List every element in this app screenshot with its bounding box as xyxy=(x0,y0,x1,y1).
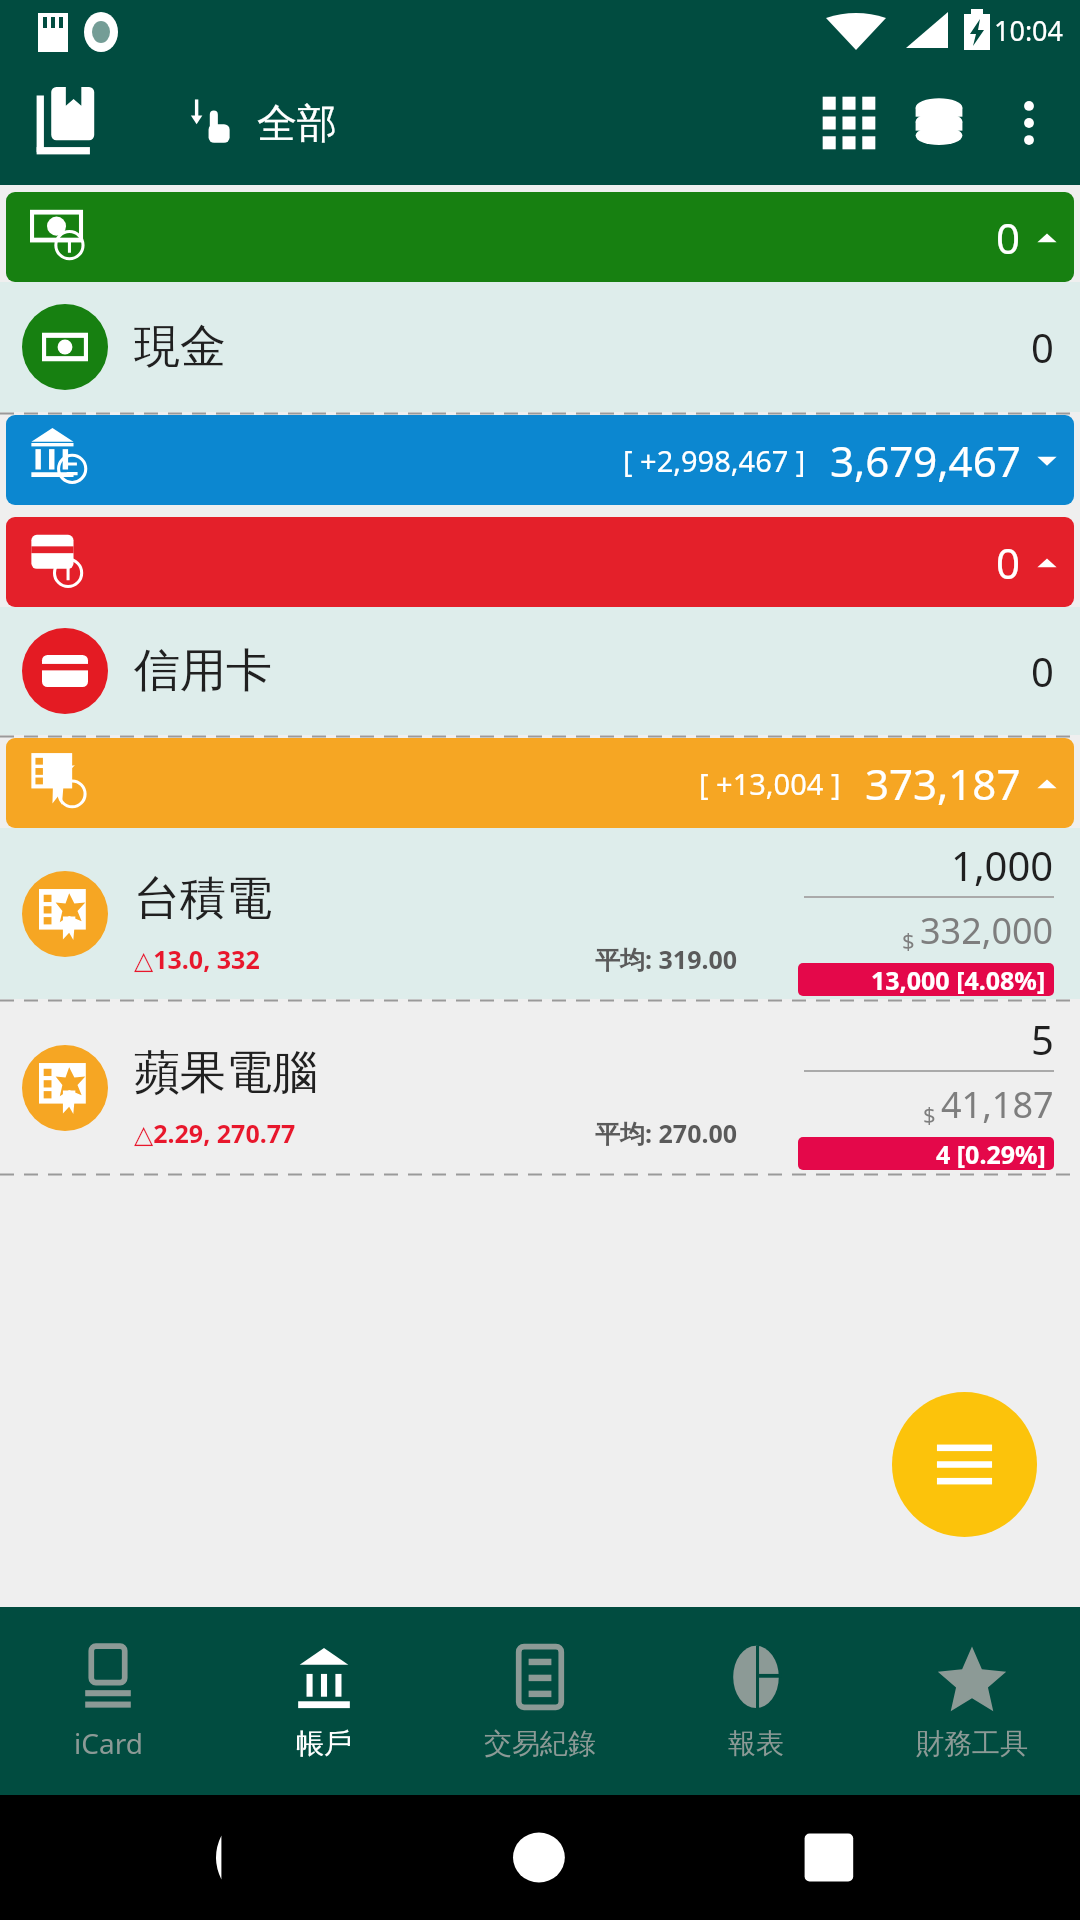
button[interactable]: 信用卡 xyxy=(0,607,1080,735)
staticText: 台積電 xyxy=(134,870,272,928)
staticText: [ +2,998,467 ] xyxy=(623,441,806,480)
button[interactable]: Books xyxy=(28,80,114,166)
staticText: 平均: 319.00 xyxy=(595,942,738,976)
staticText: 0 xyxy=(996,534,1021,591)
button[interactable]: Database xyxy=(894,78,984,168)
button[interactable]: 台積電 xyxy=(0,828,1080,999)
staticText: 全部 xyxy=(257,98,337,148)
button[interactable]: iCard xyxy=(0,1607,216,1795)
button[interactable]: 蘋果電腦 xyxy=(0,1002,1080,1173)
staticText: 10:04 xyxy=(994,12,1064,49)
staticText: 373,187 xyxy=(865,755,1021,812)
staticText: 332,000 xyxy=(920,906,1054,955)
staticText: △2.29, 270.77 xyxy=(134,1116,296,1150)
button[interactable]: 財務工具 xyxy=(864,1607,1080,1795)
staticText: 41,187 xyxy=(941,1080,1054,1129)
staticText: 蘋果電腦 xyxy=(134,1044,318,1102)
staticText: △13.0, 332 xyxy=(134,942,260,976)
staticText: [ +13,004 ] xyxy=(699,764,841,803)
button[interactable]: 全部 xyxy=(185,92,337,154)
staticText: 帳戶 xyxy=(296,1726,352,1761)
button[interactable]: 帳戶 xyxy=(216,1607,432,1795)
staticText: 0 xyxy=(1031,320,1054,374)
staticText: 4 [0.29%] xyxy=(936,1137,1046,1170)
button[interactable]: 報表 xyxy=(648,1607,864,1795)
staticText: 0 xyxy=(996,209,1021,266)
staticText: 1,000 xyxy=(951,838,1054,892)
button[interactable]: 0 xyxy=(6,192,1074,282)
staticText: $ xyxy=(923,1099,936,1129)
staticText: 交易紀錄 xyxy=(484,1726,596,1761)
button[interactable]: Grid xyxy=(804,78,894,168)
button[interactable]: 0 xyxy=(6,517,1074,607)
button[interactable]: 現金 xyxy=(0,282,1080,412)
staticText: 0 xyxy=(1031,644,1054,698)
button[interactable]: [ +2,998,467 ] xyxy=(6,415,1074,505)
staticText: 財務工具 xyxy=(916,1726,1028,1761)
button[interactable]: 交易紀錄 xyxy=(432,1607,648,1795)
staticText: iCard xyxy=(74,1724,143,1762)
staticText: 現金 xyxy=(134,318,226,376)
button[interactable]: Menu xyxy=(892,1392,1037,1537)
staticText: 3,679,467 xyxy=(830,432,1021,489)
staticText: $ xyxy=(902,925,915,955)
button[interactable]: More options xyxy=(984,78,1074,168)
staticText: 13,000 [4.08%] xyxy=(871,963,1046,996)
staticText: 信用卡 xyxy=(134,642,272,700)
staticText: 平均: 270.00 xyxy=(595,1116,738,1150)
button[interactable]: [ +13,004 ] xyxy=(6,738,1074,828)
staticText: 報表 xyxy=(728,1726,784,1761)
staticText: 5 xyxy=(1031,1012,1054,1066)
